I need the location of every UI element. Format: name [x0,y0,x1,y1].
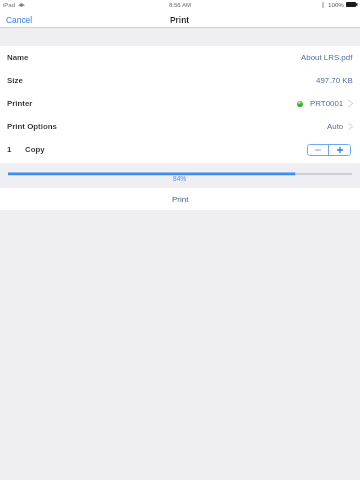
button[interactable]: Decrease copies [307,144,328,156]
staticText: Print [170,15,190,24]
staticText: Print [172,195,189,204]
staticText: PRT0001 [310,99,344,108]
staticText: 1 [7,145,12,154]
button[interactable]: Increase copies [329,144,351,156]
staticText: Print Options [7,122,57,131]
button[interactable]: Name [0,46,360,69]
staticText: Size [7,76,23,85]
staticText: Printer [7,99,33,108]
button[interactable]: Cancel [6,15,33,24]
button[interactable]: Print [0,188,360,210]
staticText: Copy [25,145,45,154]
staticText: 100% [328,1,344,8]
staticText: iPad [3,2,16,9]
button[interactable]: Printer [0,92,360,115]
staticText: About LRS.pdf [301,53,353,62]
staticText: Cancel [6,15,33,24]
staticText: 497.70 KB [316,76,353,85]
staticText: 84% [173,175,187,182]
staticText: Auto [327,122,344,131]
staticText: 8:56 AM [169,2,192,9]
button[interactable]: Size [0,69,360,92]
button[interactable]: Print Options [0,115,360,138]
staticText: Name [7,53,29,62]
